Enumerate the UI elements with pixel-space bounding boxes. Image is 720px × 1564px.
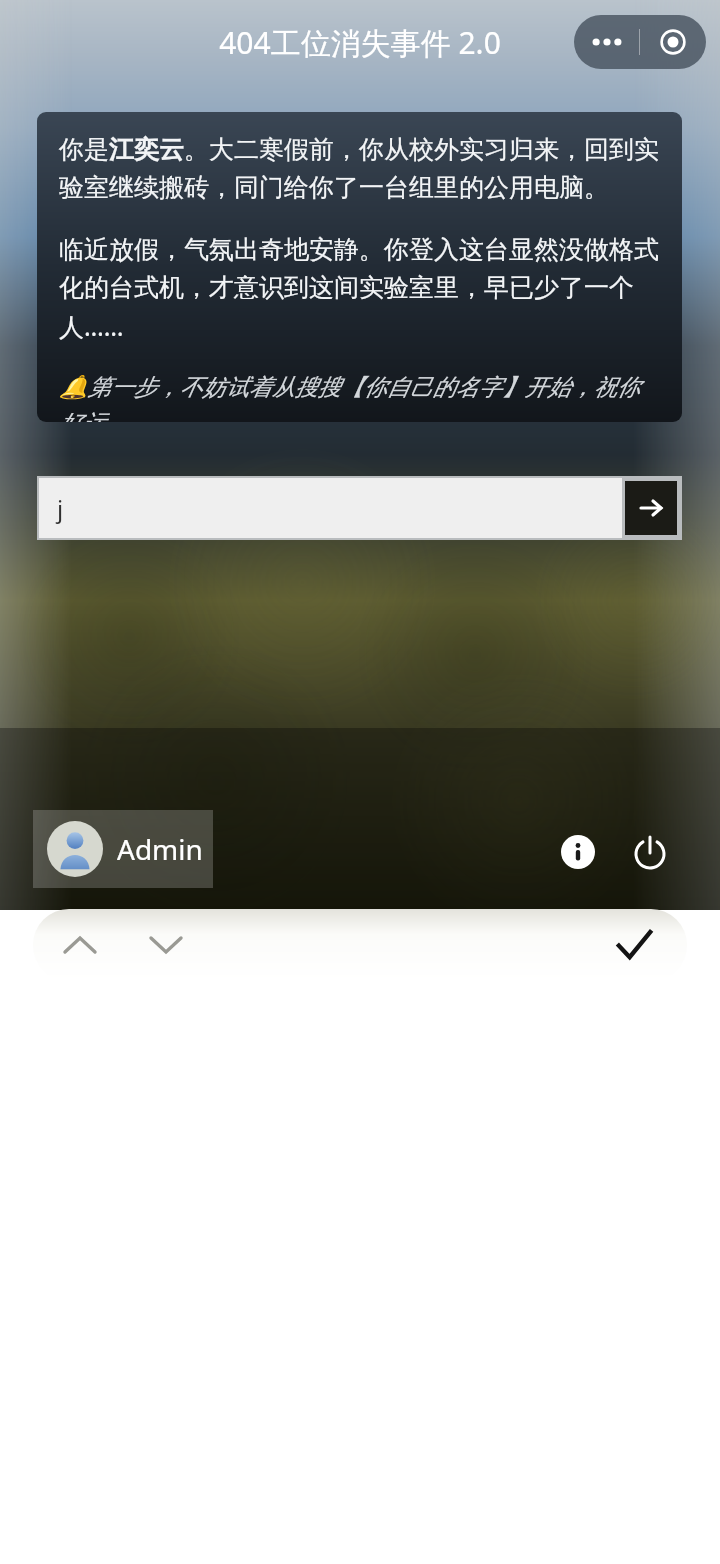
staticText: 临近放假，气氛出奇地安静。你登入这台显然没做格式化的台式机，才意识到这间实验室里… bbox=[59, 234, 660, 343]
button[interactable]: Admin bbox=[33, 810, 213, 888]
button[interactable]: j bbox=[39, 478, 622, 538]
staticText: j bbox=[57, 492, 64, 525]
button[interactable]: More bbox=[574, 15, 639, 69]
button[interactable]: Power bbox=[626, 828, 674, 876]
staticText: Admin bbox=[117, 830, 203, 868]
button[interactable]: Previous bbox=[51, 916, 109, 974]
button[interactable]: Close bbox=[640, 15, 706, 69]
button[interactable]: Search bbox=[625, 481, 677, 535]
staticText: 404工位消失事件 2.0 bbox=[219, 22, 501, 63]
staticText: 🔔第一步，不妨试着从搜搜【你自己的名字】开始，祝你好运。 bbox=[59, 373, 660, 422]
button[interactable]: Next bbox=[137, 916, 195, 974]
button[interactable]: Done bbox=[603, 914, 665, 976]
button[interactable]: Accessibility bbox=[554, 828, 602, 876]
staticText: 你是江奕云。大二寒假前，你从校外实习归来，回到实验室继续搬砖，同门给你了一台组里… bbox=[59, 134, 660, 204]
